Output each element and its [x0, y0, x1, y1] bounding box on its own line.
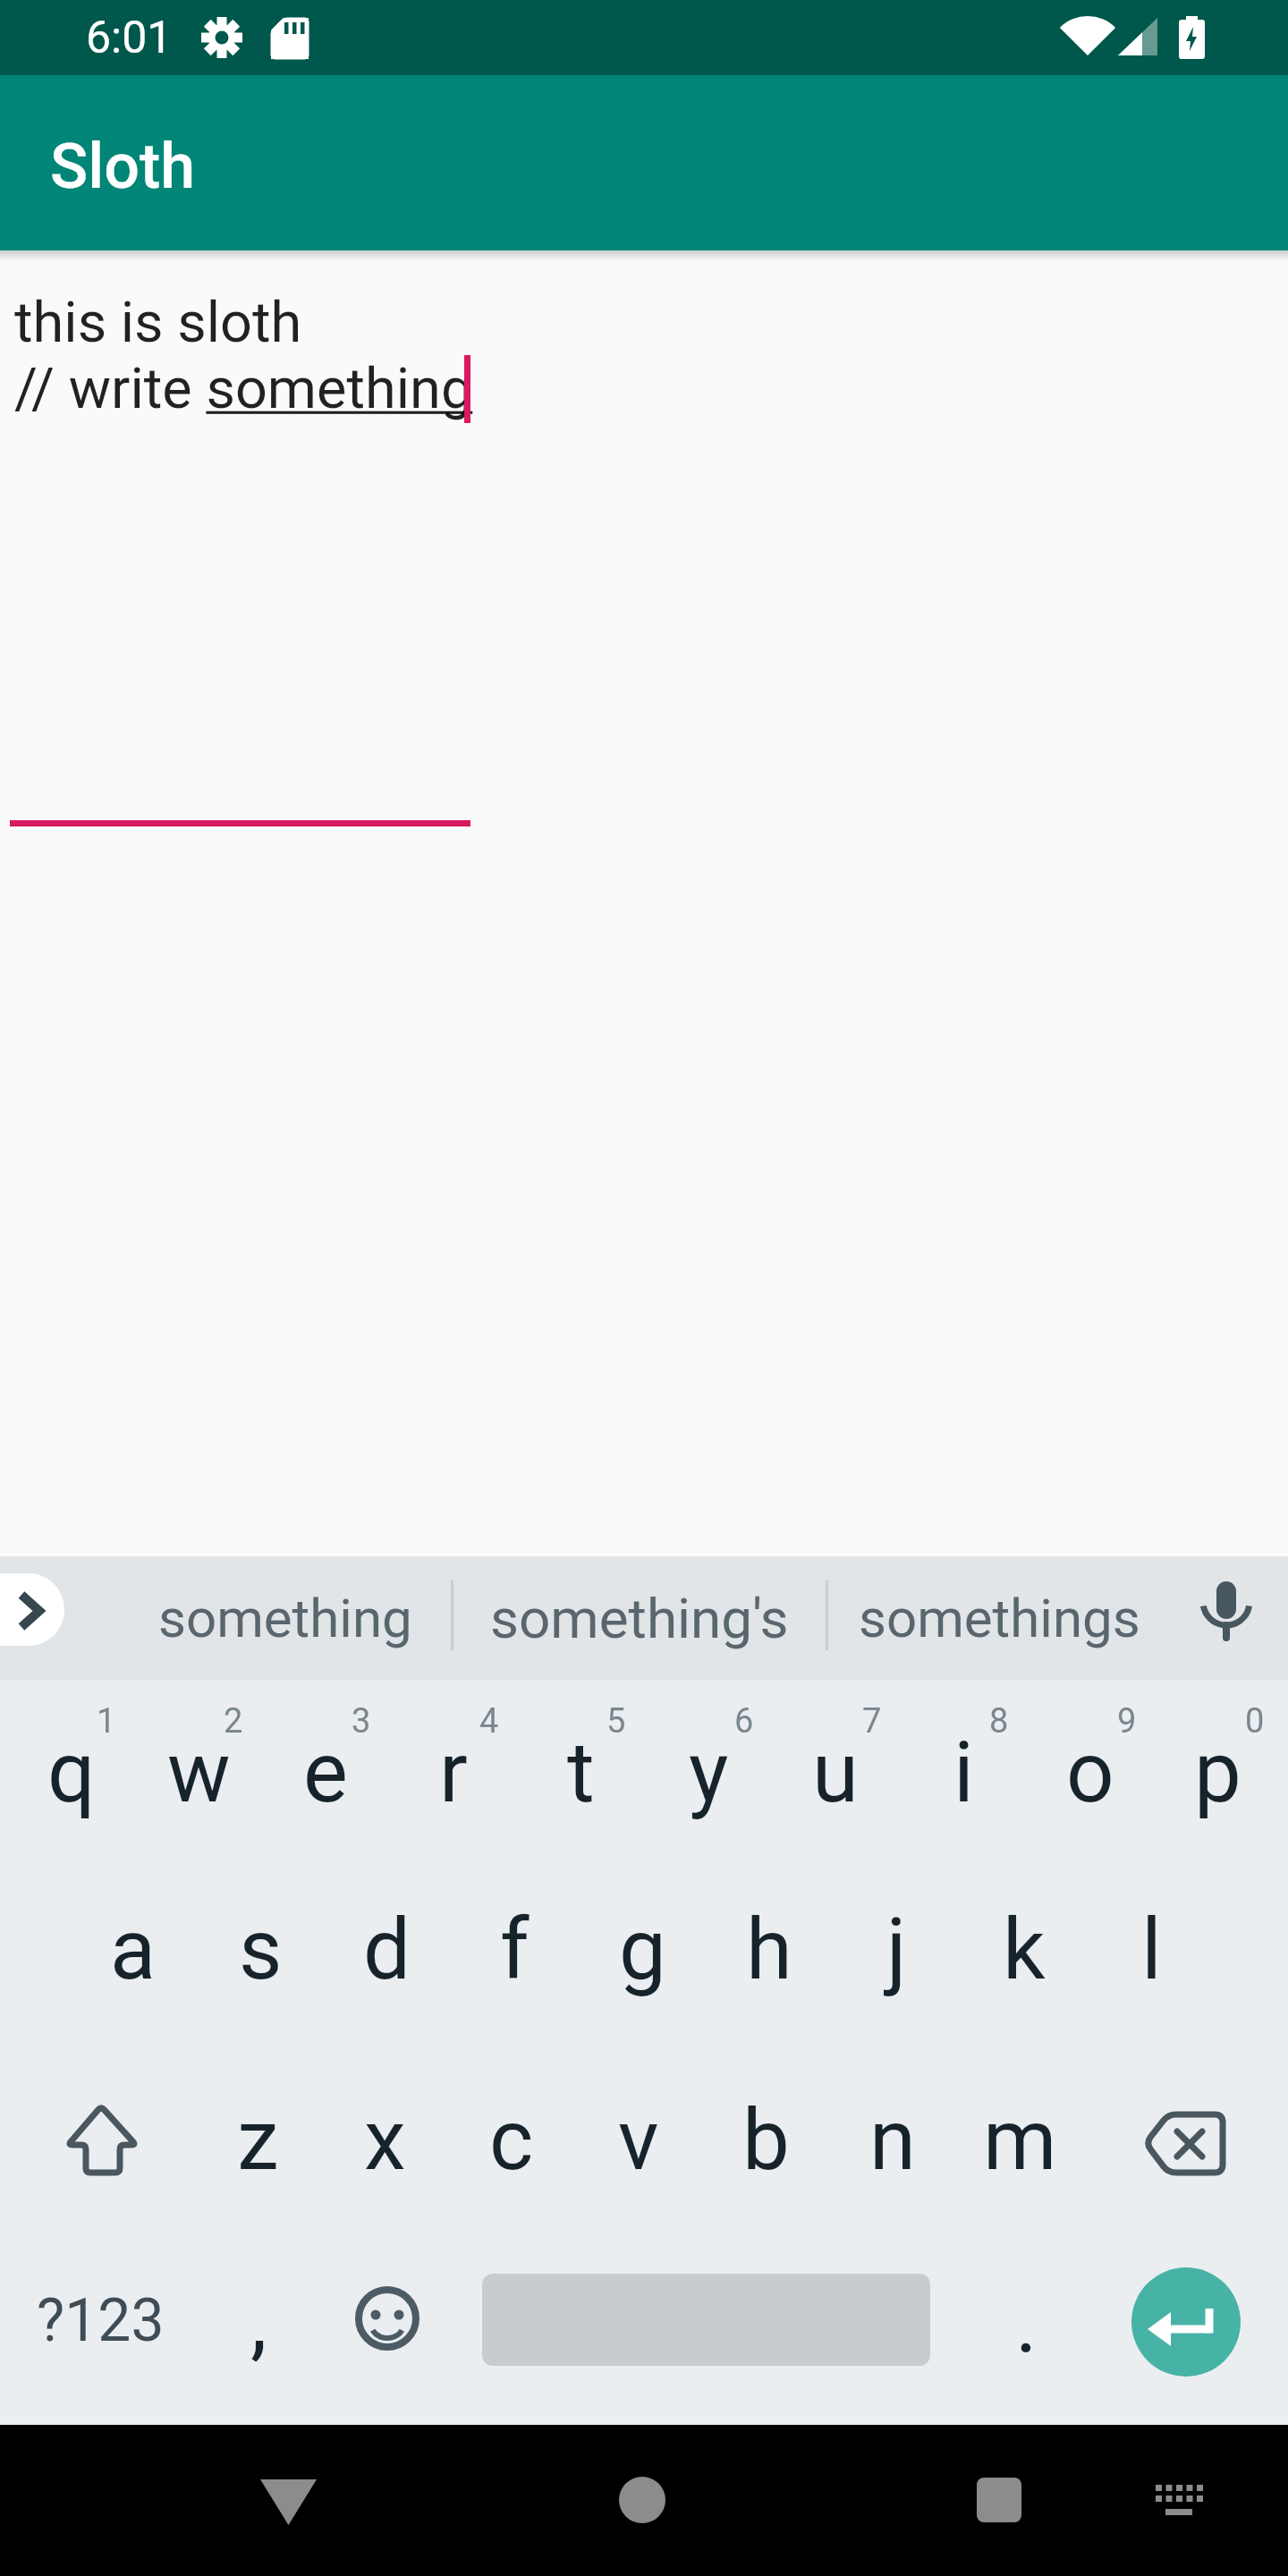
staticText: ?123 [37, 2286, 165, 2355]
staticText: r [439, 1724, 468, 1822]
button[interactable]: f [450, 1857, 579, 2043]
button[interactable]: Sloth [0, 75, 1288, 250]
button[interactable]: i [899, 1680, 1028, 1866]
button[interactable]: o [1026, 1680, 1155, 1866]
staticText: 8 [989, 1701, 1009, 1741]
button[interactable]: n [828, 2047, 957, 2233]
staticText: z [237, 2091, 279, 2190]
staticText: n [869, 2091, 916, 2190]
button[interactable]: v [574, 2047, 703, 2233]
staticText: c [489, 2091, 534, 2190]
staticText: o [1066, 1724, 1114, 1822]
button[interactable] [934, 2425, 1063, 2576]
staticText: w [167, 1724, 231, 1822]
staticText: something [158, 1587, 412, 1649]
staticText: 5 [606, 1701, 626, 1741]
button[interactable]: r [389, 1680, 518, 1866]
staticText: x [364, 2091, 406, 2190]
staticText: 2 [224, 1701, 243, 1741]
staticText: j [886, 1901, 907, 1999]
staticText: 0 [1245, 1701, 1265, 1741]
button[interactable]: this is sloth // write something [14, 290, 473, 422]
staticText: 9 [1117, 1701, 1137, 1741]
button[interactable]: h [705, 1857, 834, 2043]
button[interactable]: y [644, 1680, 773, 1866]
button[interactable]: somethings [827, 1556, 1171, 1680]
staticText: 3 [352, 1701, 371, 1741]
button[interactable]: s [196, 1857, 325, 2043]
staticText: . [1015, 2274, 1038, 2372]
staticText: u [812, 1724, 859, 1822]
button[interactable] [578, 2425, 707, 2576]
button[interactable] [1095, 2052, 1288, 2238]
button[interactable] [322, 2239, 451, 2425]
staticText: 4 [479, 1701, 499, 1741]
button[interactable]: j [832, 1857, 961, 2043]
staticText: p [1194, 1724, 1241, 1822]
button[interactable]: q [7, 1680, 136, 1866]
staticText: f [500, 1901, 530, 1999]
button[interactable] [193, 2239, 322, 2425]
staticText: d [363, 1901, 411, 1999]
button[interactable]: z [193, 2047, 322, 2233]
button[interactable] [0, 2239, 193, 2425]
staticText: , [250, 2272, 267, 2370]
staticText: 1 [97, 1701, 116, 1741]
button[interactable]: u [771, 1680, 900, 1866]
staticText: somethings [859, 1587, 1140, 1649]
button[interactable]: m [955, 2047, 1084, 2233]
button[interactable] [0, 1573, 64, 1646]
staticText: a [110, 1901, 157, 1999]
button[interactable]: l [1087, 1857, 1216, 2043]
staticText: v [618, 2091, 659, 2190]
button[interactable]: b [701, 2047, 830, 2233]
button[interactable]: c [447, 2047, 576, 2233]
button[interactable]: e [261, 1680, 390, 1866]
button[interactable] [1172, 1556, 1288, 1680]
button[interactable]: d [323, 1857, 452, 2043]
button[interactable] [224, 2425, 352, 2576]
staticText: 6:01 [86, 12, 173, 64]
button[interactable]: something [120, 1556, 451, 1680]
staticText: k [1003, 1901, 1046, 1999]
button[interactable] [0, 1680, 1288, 2425]
staticText: s [239, 1901, 283, 1999]
staticText: h [746, 1901, 792, 1999]
button[interactable] [1131, 2267, 1241, 2377]
staticText: m [983, 2091, 1057, 2190]
staticText: q [47, 1724, 96, 1822]
staticText: i [953, 1724, 974, 1822]
staticText: y [689, 1724, 729, 1822]
staticText: g [619, 1901, 666, 1999]
button[interactable]: t [516, 1680, 645, 1866]
staticText: b [742, 2091, 790, 2190]
button[interactable]: x [320, 2047, 449, 2233]
button[interactable]: p [1153, 1680, 1282, 1866]
button[interactable]: something's [453, 1556, 826, 1680]
button[interactable] [0, 2052, 193, 2238]
staticText: t [567, 1724, 595, 1822]
staticText: Sloth [50, 130, 196, 203]
button[interactable]: k [960, 1857, 1089, 2043]
staticText: l [1141, 1901, 1162, 1999]
button[interactable]: g [578, 1857, 707, 2043]
button[interactable] [1118, 2425, 1247, 2576]
staticText: e [303, 1724, 348, 1822]
staticText: something's [490, 1586, 789, 1651]
staticText: 7 [862, 1701, 882, 1741]
button[interactable] [966, 2239, 1095, 2425]
button[interactable]: w [134, 1680, 263, 1866]
staticText: 6 [734, 1701, 754, 1741]
button[interactable]: a [69, 1857, 198, 2043]
